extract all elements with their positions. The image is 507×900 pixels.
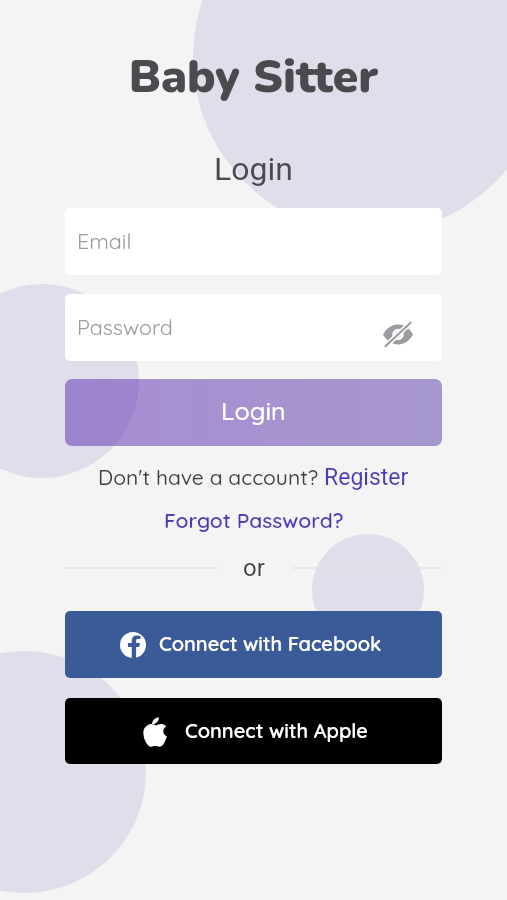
button[interactable]: Forgot Password?: [0, 504, 507, 536]
button[interactable]: Don't have a account? Register: [0, 460, 507, 494]
button[interactable]: Password: [65, 294, 442, 361]
staticText: Password: [77, 313, 173, 340]
button[interactable]: Connect with Facebook: [65, 611, 442, 678]
staticText: or: [243, 554, 265, 582]
staticText: Baby Sitter: [0, 45, 507, 108]
staticText: Don't have a account? Register: [98, 464, 409, 491]
staticText: Connect with Facebook: [159, 631, 382, 656]
button[interactable]: Login: [65, 379, 442, 446]
button[interactable]: Connect with Apple: [65, 698, 442, 764]
button[interactable]: Email: [65, 208, 442, 275]
staticText: Login: [221, 395, 286, 426]
staticText: Forgot Password?: [164, 507, 344, 533]
staticText: Connect with Apple: [185, 718, 368, 743]
button[interactable]: Show password: [378, 314, 418, 354]
staticText: Email: [77, 227, 132, 254]
staticText: Login: [0, 150, 507, 188]
